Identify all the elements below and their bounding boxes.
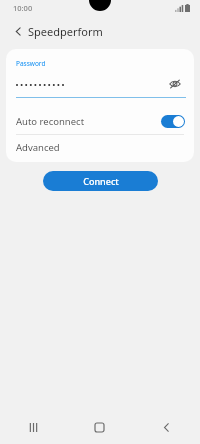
staticText: 10:00 (13, 3, 33, 13)
button[interactable]: Auto reconnect (6, 108, 194, 134)
staticText: Auto reconnect (16, 115, 160, 128)
button[interactable]: Recent apps (0, 412, 66, 442)
button[interactable]: Auto reconnect toggle (160, 113, 186, 129)
staticText: Advanced (16, 141, 60, 154)
button[interactable]: Advanced (6, 135, 194, 160)
button[interactable]: Show password (164, 73, 186, 95)
staticText: Speedperform (28, 24, 103, 39)
button[interactable]: Back (133, 412, 200, 442)
staticText: Connect (83, 175, 119, 187)
button[interactable]: Connect (43, 171, 158, 191)
button[interactable]: Home (66, 412, 133, 442)
staticText: Password (16, 59, 46, 68)
button[interactable]: Back (8, 21, 28, 41)
button[interactable]: Password (6, 49, 194, 98)
